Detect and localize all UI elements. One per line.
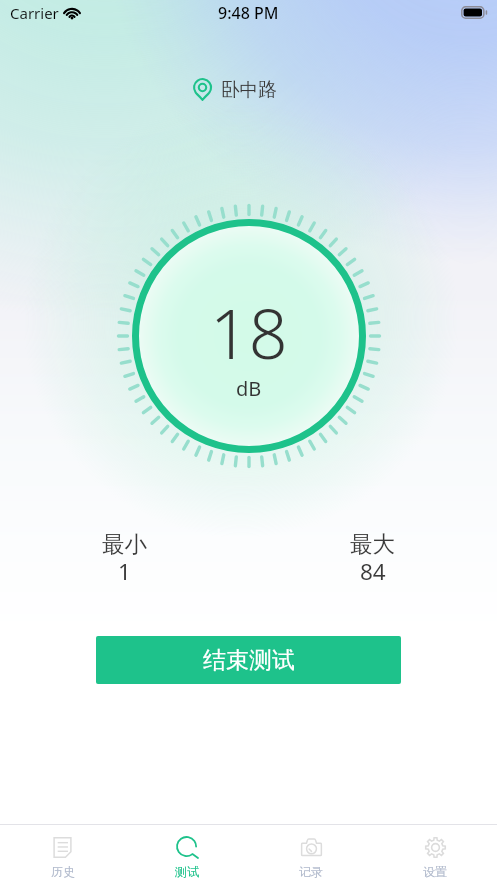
button[interactable]: 卧中路 <box>0 78 497 101</box>
staticText: dB <box>236 375 262 402</box>
staticText: 9:48 PM <box>218 2 279 24</box>
staticText: 84 <box>360 556 386 587</box>
staticText: Carrier <box>10 3 59 23</box>
staticText: 18 <box>210 286 288 379</box>
button[interactable]: Records <box>249 825 373 883</box>
staticText: 记录 <box>299 864 323 879</box>
staticText: 设置 <box>423 864 447 879</box>
other: History <box>52 837 73 858</box>
staticText: 测试 <box>175 864 199 879</box>
staticText: 结束测试 <box>203 646 295 675</box>
button[interactable]: History <box>0 825 125 883</box>
button[interactable]: Settings <box>373 825 497 883</box>
staticText: 最大 <box>350 530 395 558</box>
staticText: 卧中路 <box>221 78 277 101</box>
other: Measure <box>177 837 198 858</box>
other: Settings <box>425 837 446 858</box>
staticText: 历史 <box>51 864 75 879</box>
staticText: 最小 <box>102 530 147 558</box>
other: Records <box>301 837 322 858</box>
staticText: 1 <box>118 556 131 587</box>
button[interactable]: 结束测试 <box>96 636 401 684</box>
button[interactable]: Measure <box>125 825 249 883</box>
